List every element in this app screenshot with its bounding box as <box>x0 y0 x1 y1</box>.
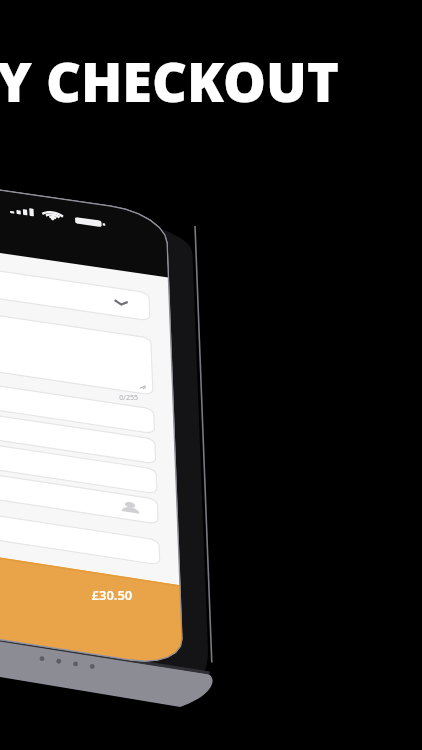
button[interactable]: Easy checkout phone preview <box>0 0 422 750</box>
